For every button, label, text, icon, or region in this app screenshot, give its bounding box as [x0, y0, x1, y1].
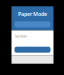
staticText: Section	[14, 33, 26, 39]
staticText: Paper Mode	[18, 10, 47, 17]
